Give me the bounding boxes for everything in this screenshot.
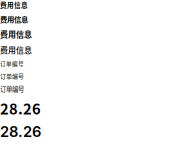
staticText: 订单编号 (0, 71, 24, 80)
staticText: 费用信息 (0, 44, 32, 55)
staticText: 费用信息 (0, 14, 28, 24)
staticText: 订单编号 (0, 59, 24, 67)
staticText: 28.26 (0, 97, 41, 119)
staticText: 费用信息 (0, 28, 32, 40)
staticText: 订单编号 (0, 84, 24, 93)
staticText: 28.26 (0, 123, 41, 140)
staticText: 费用信息 (0, 0, 28, 10)
